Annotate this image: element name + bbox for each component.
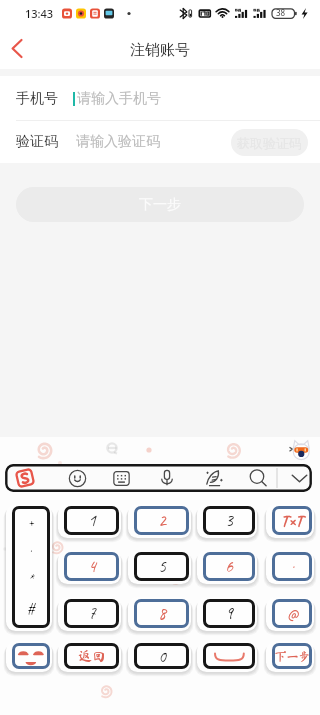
button[interactable]: + (6, 504, 52, 635)
button[interactable]: Hide keyboard (290, 464, 309, 492)
staticText: · (29, 543, 32, 559)
button[interactable]: 获取验证码 (231, 129, 308, 156)
staticText: 5 (158, 556, 166, 577)
staticText: @ (287, 603, 298, 624)
button[interactable]: Sogou input (15, 464, 35, 492)
staticText: 0 (158, 646, 166, 667)
button[interactable]: 1 (58, 504, 121, 542)
button[interactable]: Search (249, 464, 268, 492)
staticText: 请输入验证码 (76, 133, 160, 151)
staticText: 38 (276, 7, 286, 18)
staticText: 验证码 (16, 133, 58, 151)
button[interactable]: Keyboard layout (113, 464, 130, 492)
button[interactable]: 4 (58, 550, 121, 588)
button[interactable]: 5 (128, 550, 191, 588)
staticText: 4 (88, 556, 96, 577)
button[interactable]: Assistant (289, 439, 313, 461)
button[interactable]: @ (266, 597, 314, 635)
staticText: 注销账号 (130, 41, 190, 60)
staticText: + (28, 514, 34, 530)
staticText: 6 (225, 556, 233, 577)
button[interactable]: 下一步 (266, 641, 314, 676)
button[interactable]: 返回 (58, 641, 121, 676)
staticText: T×T (281, 511, 303, 531)
staticText: * (28, 572, 33, 588)
staticText: 13:43 (25, 6, 54, 21)
staticText: 7 (88, 603, 96, 624)
staticText: 手机号 (16, 90, 58, 108)
button[interactable]: 6 (197, 550, 257, 588)
button[interactable]: 手机号 (0, 78, 320, 120)
button[interactable]: 2 (128, 504, 191, 542)
staticText: 8 (158, 603, 166, 624)
staticText: 返回 (78, 649, 106, 663)
button[interactable]: 9 (197, 597, 257, 635)
button[interactable]: T×T (266, 504, 314, 542)
staticText: # (27, 601, 35, 617)
button[interactable]: · (266, 550, 314, 588)
staticText: 获取验证码 (237, 135, 302, 151)
staticText: 2 (158, 510, 166, 531)
button[interactable]: 0 (128, 641, 191, 676)
staticText: 下一步 (274, 650, 311, 662)
button[interactable]: Voice input (158, 464, 176, 492)
button[interactable]: Back (0, 26, 38, 69)
button[interactable]: Handwriting (205, 464, 223, 492)
button[interactable] (6, 641, 52, 676)
button[interactable]: Emoji (69, 464, 86, 492)
button[interactable]: 3 (197, 504, 257, 542)
staticText: 9 (225, 603, 233, 624)
staticText: 下一步 (139, 196, 181, 214)
staticText: · (291, 558, 294, 576)
button[interactable]: 8 (128, 597, 191, 635)
staticText: 3 (225, 510, 233, 531)
staticText: 1 (88, 510, 96, 531)
staticText: 请输入手机号 (77, 90, 161, 108)
button[interactable]: 7 (58, 597, 121, 635)
button[interactable] (197, 641, 257, 676)
